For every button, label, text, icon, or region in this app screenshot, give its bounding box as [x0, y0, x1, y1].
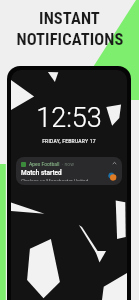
button[interactable]: Apex Football [16, 157, 122, 185]
staticText: Apex Football [29, 161, 60, 167]
other: Expand notification [112, 161, 117, 166]
staticText: 12:53 [11, 102, 127, 134]
staticText: FRIDAY, FEBRUARY 17 [11, 138, 127, 144]
staticText: INSTANT [39, 9, 100, 28]
staticText: NOTIFICATIONS [16, 30, 124, 49]
staticText: Chelsea vs Manchester United [21, 178, 89, 181]
staticText: · now [62, 161, 74, 167]
staticText: Match started [21, 169, 62, 177]
